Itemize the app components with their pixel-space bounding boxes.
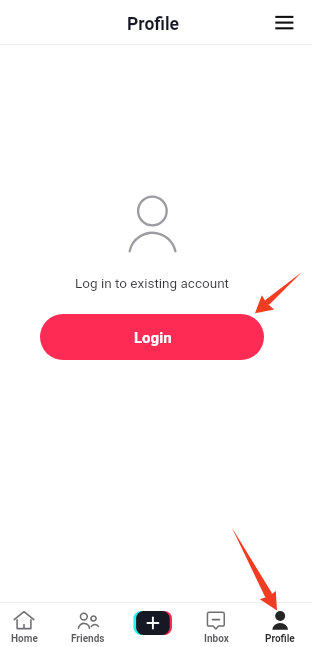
button[interactable]: Home: [0, 603, 56, 647]
button[interactable]: Login: [40, 314, 264, 360]
button[interactable]: Inbox: [184, 603, 248, 647]
staticText: Inbox: [204, 633, 229, 645]
staticText: Login: [134, 329, 172, 347]
staticText: Friends: [71, 633, 105, 645]
staticText: Home: [11, 633, 38, 645]
staticText: Profile: [127, 14, 180, 35]
button[interactable]: Profile: [248, 603, 312, 647]
staticText: Log in to existing account: [75, 275, 229, 291]
button[interactable]: Create: [120, 603, 184, 647]
button[interactable]: Friends: [56, 603, 120, 647]
button[interactable]: Menu: [264, 4, 288, 28]
staticText: Profile: [265, 633, 295, 645]
